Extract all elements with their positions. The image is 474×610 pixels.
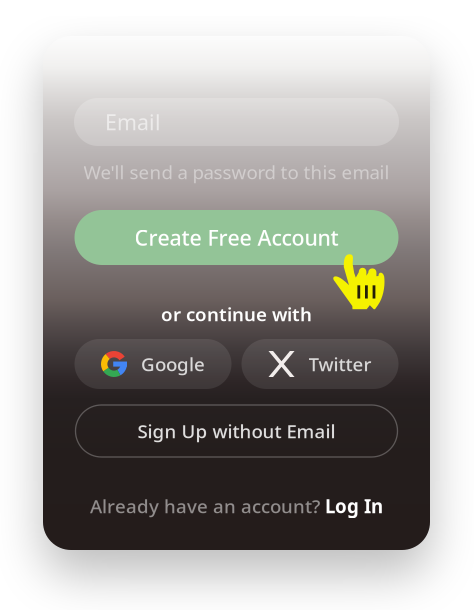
staticText: Log In bbox=[325, 494, 383, 518]
button[interactable]: Already have an account? bbox=[90, 494, 383, 518]
staticText: Google bbox=[141, 352, 205, 376]
button[interactable]: Create Free Account bbox=[74, 210, 398, 265]
button[interactable]: Google bbox=[74, 339, 231, 389]
staticText: We'll send a password to this email bbox=[83, 160, 389, 184]
staticText: Already have an account? bbox=[90, 494, 320, 518]
button[interactable]: Email bbox=[74, 98, 399, 146]
staticText: or continue with bbox=[161, 302, 312, 326]
button[interactable]: Twitter bbox=[241, 339, 398, 389]
button[interactable]: Sign Up without Email bbox=[75, 405, 397, 457]
staticText: Twitter bbox=[308, 352, 371, 376]
staticText: Email bbox=[105, 108, 161, 136]
staticText: Create Free Account bbox=[134, 223, 338, 252]
staticText: Sign Up without Email bbox=[137, 419, 335, 443]
